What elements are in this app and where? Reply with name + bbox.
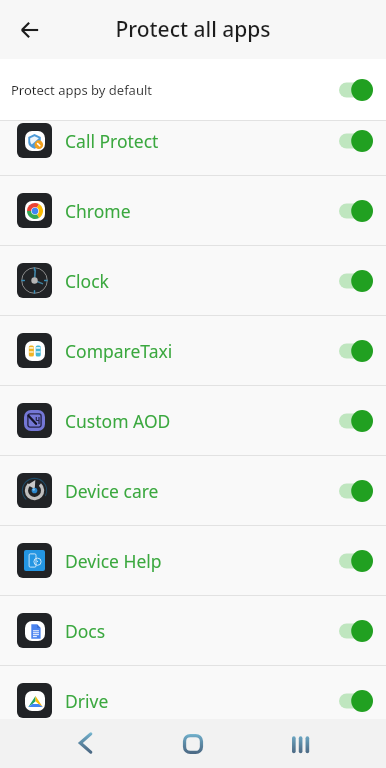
- staticText: Call Protect: [65, 129, 159, 153]
- staticText: Protect apps by default: [11, 81, 152, 99]
- staticText: Clock: [65, 269, 109, 293]
- button[interactable]: Protect apps by default: [0, 59, 386, 120]
- staticText: Protect all apps: [115, 15, 271, 44]
- button[interactable]: Back: [62, 721, 108, 767]
- button[interactable]: Call Protect: [0, 121, 386, 175]
- button[interactable]: Back: [10, 10, 50, 50]
- staticText: Drive: [65, 689, 109, 713]
- button[interactable]: Chrome: [0, 176, 386, 245]
- button[interactable]: Docs: [0, 596, 386, 665]
- button[interactable]: Clock: [0, 246, 386, 315]
- button[interactable]: Device Help: [0, 526, 386, 595]
- staticText: Docs: [65, 619, 106, 643]
- staticText: Device Help: [65, 549, 162, 573]
- button[interactable]: Custom AOD: [0, 386, 386, 455]
- button[interactable]: CompareTaxi: [0, 316, 386, 385]
- staticText: CompareTaxi: [65, 339, 173, 363]
- button[interactable]: Device care: [0, 456, 386, 525]
- staticText: Chrome: [65, 199, 131, 223]
- staticText: Custom AOD: [65, 409, 171, 433]
- button[interactable]: Drive: [0, 666, 386, 719]
- staticText: Device care: [65, 479, 159, 503]
- button[interactable]: Recents: [278, 721, 324, 767]
- button[interactable]: Home: [170, 721, 216, 767]
